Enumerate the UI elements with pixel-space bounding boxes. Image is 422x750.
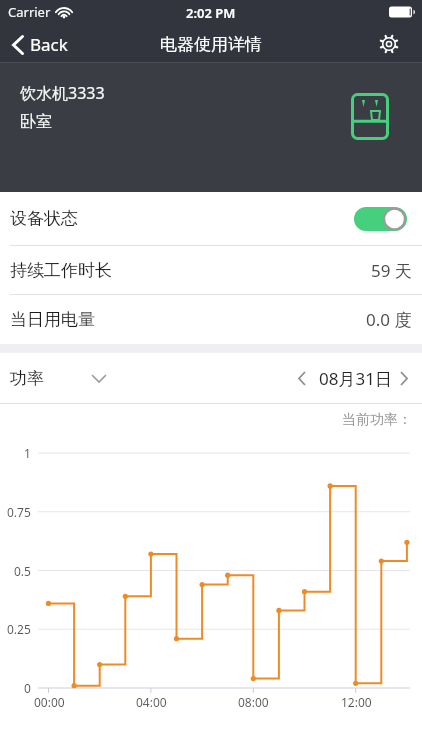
button[interactable]: 设备状态 [10, 192, 407, 245]
staticText: 饮水机3333 [20, 82, 105, 104]
staticText: 08:00 [238, 694, 269, 710]
staticText: 59 天 [371, 259, 412, 282]
button[interactable]: Back [12, 33, 68, 56]
staticText: 0.25 [7, 621, 31, 637]
button[interactable]: 功率 [10, 368, 107, 389]
staticText: 卧室 [20, 112, 52, 132]
staticText: 00:00 [34, 694, 65, 710]
staticText: Back [30, 33, 68, 56]
staticText: 2:02 PM [186, 4, 236, 22]
staticText: 功率 [10, 368, 44, 389]
button[interactable] [378, 33, 400, 55]
staticText: 持续工作时长 [10, 260, 112, 281]
staticText: 0.0 度 [366, 308, 412, 331]
staticText: 08月31日 [319, 367, 392, 390]
staticText: 0.75 [7, 504, 31, 520]
button[interactable] [394, 362, 414, 394]
button[interactable] [292, 362, 312, 394]
staticText: 当日用电量 [10, 309, 95, 330]
staticText: 设备状态 [10, 208, 78, 229]
staticText: 0.5 [14, 563, 31, 579]
staticText: 当前功率： [342, 411, 412, 429]
staticText: 12:00 [341, 694, 372, 710]
staticText: 1 [24, 445, 31, 461]
staticText: 0 [24, 680, 31, 696]
staticText: 04:00 [136, 694, 167, 710]
staticText: Carrier [8, 3, 51, 21]
button[interactable] [354, 207, 407, 231]
staticText: 电器使用详情 [160, 34, 262, 55]
